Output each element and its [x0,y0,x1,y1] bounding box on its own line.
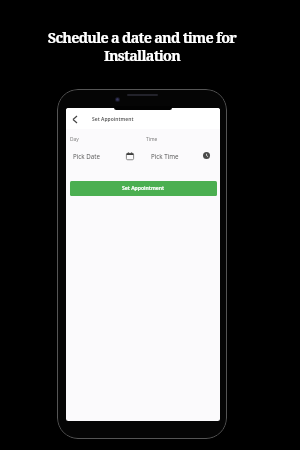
button[interactable]: Set Appointment [70,181,217,196]
staticText: Schedule a date and time for Installatio… [32,28,252,65]
staticText: Day [70,136,79,143]
staticText: Set Appointment [122,185,165,192]
staticText: Set Appointment [92,116,134,123]
button[interactable]: Pick Time [149,150,210,161]
staticText: Time [146,136,158,143]
staticText: Pick Time [151,152,179,160]
button[interactable]: Back [69,114,80,125]
staticText: Pick Date [73,152,100,160]
button[interactable]: Pick Date [71,150,134,161]
